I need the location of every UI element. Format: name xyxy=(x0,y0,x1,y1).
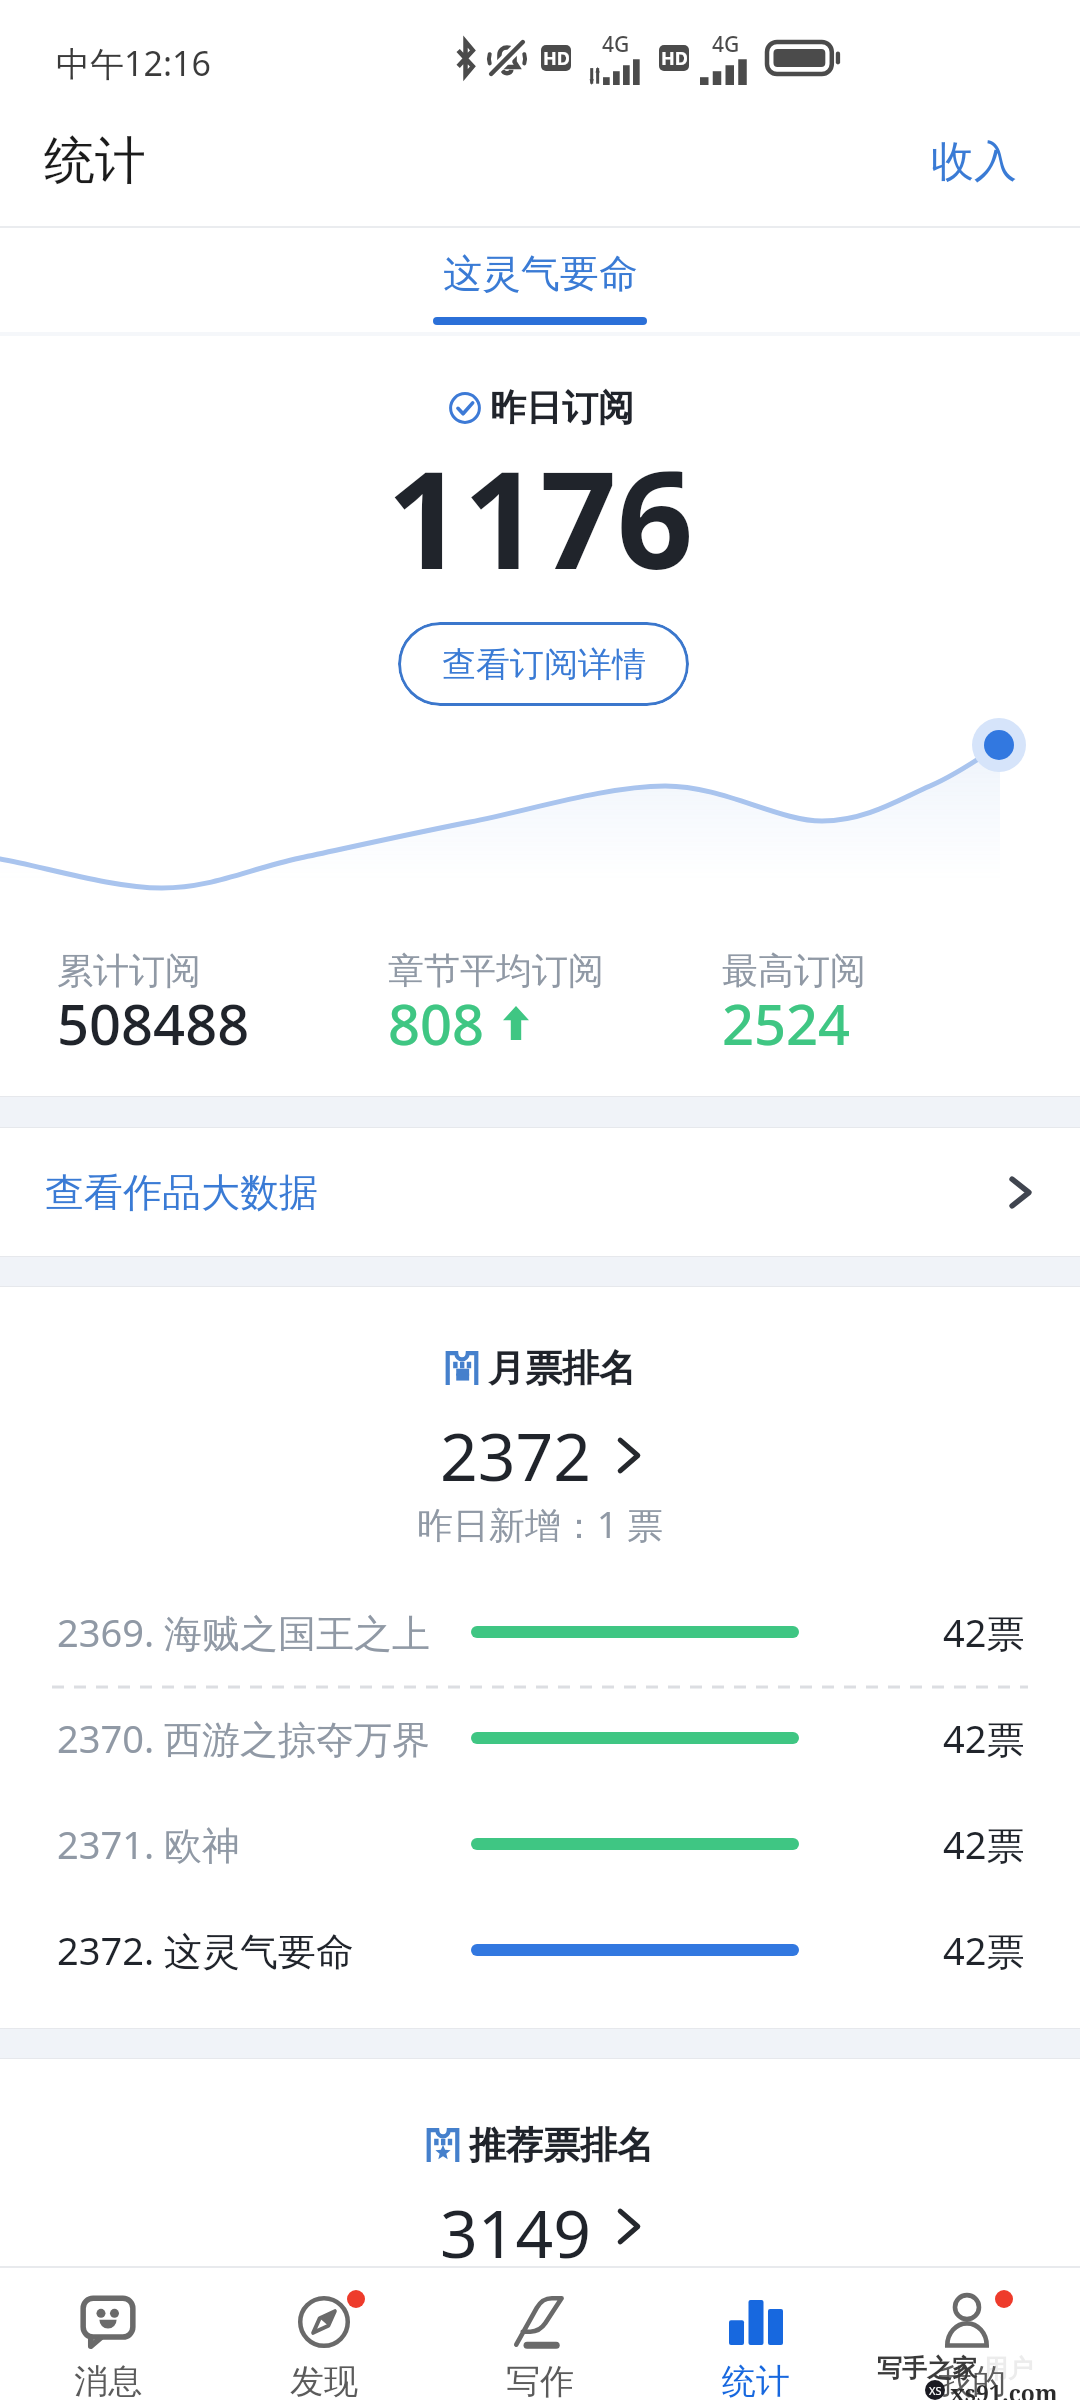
staticText: 42票 xyxy=(943,1818,1025,1870)
staticText: 昨日订阅 xyxy=(490,385,634,430)
button[interactable]: 2372. 这灵气要命 xyxy=(0,1897,1080,2003)
button[interactable]: 3149 xyxy=(0,2187,1080,2266)
staticText: 中午12:16 xyxy=(56,40,211,86)
staticText: 累计订阅 xyxy=(57,948,201,993)
button[interactable]: Discover xyxy=(216,2268,432,2400)
staticText: 这灵气要命 xyxy=(443,249,638,298)
staticText: HD xyxy=(543,46,570,71)
staticText: 42票 xyxy=(943,1606,1025,1658)
staticText: 1176 xyxy=(0,426,1080,609)
staticText: 2370. 西游之掠夺万界 xyxy=(57,1712,431,1764)
staticText: 查看订阅详情 xyxy=(442,643,646,686)
staticText: 发现 xyxy=(290,2360,358,2400)
staticText: xs91.com xyxy=(950,2377,1058,2400)
staticText: 42票 xyxy=(943,1924,1025,1976)
staticText: 4G xyxy=(712,30,740,59)
staticText: 2524 xyxy=(722,985,851,1061)
staticText: 统计 xyxy=(722,2360,790,2400)
staticText: 消息 xyxy=(74,2360,142,2400)
button[interactable]: 2372 xyxy=(0,1410,1080,1500)
button[interactable]: 收入 xyxy=(887,119,1080,205)
staticText: HD xyxy=(661,46,688,71)
staticText: 月票排名 xyxy=(488,1345,636,1392)
staticText: XS xyxy=(929,2383,942,2398)
button[interactable]: 查看订阅详情 xyxy=(398,622,689,706)
staticText: 2372 xyxy=(440,1410,592,1500)
button[interactable]: 2371. 欧神 xyxy=(0,1791,1080,1897)
staticText: 2369. 海贼之国王之上 xyxy=(57,1606,431,1658)
staticText: 章节平均订阅 xyxy=(388,948,604,993)
staticText: 收入 xyxy=(931,135,1017,189)
button[interactable]: 2369. 海贼之国王之上 xyxy=(0,1579,1080,1685)
staticText: 808 xyxy=(388,985,485,1061)
staticText: 2372. 这灵气要命 xyxy=(57,1924,355,1976)
button[interactable]: 2370. 西游之掠夺万界 xyxy=(0,1685,1080,1791)
staticText: 推荐票排名 xyxy=(469,2122,654,2169)
staticText: 写作 xyxy=(506,2360,574,2400)
staticText: 用户 xyxy=(983,2353,1033,2384)
staticText: 508488 xyxy=(57,985,250,1061)
staticText: 我的 xyxy=(938,2360,1006,2400)
staticText: 统计 xyxy=(44,129,146,193)
staticText: 昨日新增：1 票 xyxy=(0,1500,1080,1549)
button[interactable]: Messages xyxy=(0,2268,216,2400)
staticText: 查看作品大数据 xyxy=(45,1168,318,1217)
button[interactable]: Profile xyxy=(864,2268,1080,2400)
button[interactable]: Statistics xyxy=(648,2268,864,2400)
button[interactable]: Write xyxy=(432,2268,648,2400)
button[interactable]: 查看作品大数据 xyxy=(0,1128,1080,1256)
staticText: 42票 xyxy=(943,1712,1025,1764)
staticText: 4G xyxy=(602,30,630,59)
staticText: 写手之家 xyxy=(877,2353,977,2384)
staticText: 3149 xyxy=(440,2187,592,2266)
button[interactable]: 这灵气要命 xyxy=(433,228,647,325)
staticText: 2371. 欧神 xyxy=(57,1818,241,1870)
staticText: 最高订阅 xyxy=(722,948,866,993)
